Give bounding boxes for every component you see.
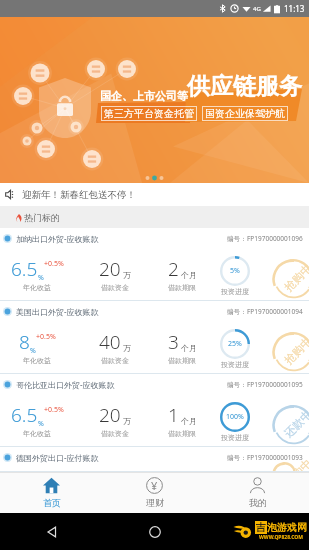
staticText: ¥ [151, 478, 158, 493]
button[interactable]: 抢购中 [0, 228, 309, 301]
staticText: 编号： [227, 381, 247, 389]
staticText: 迎新年！新春红包送不停！ [22, 189, 136, 201]
staticText: 3 [168, 329, 179, 355]
staticText: +0.5% [44, 405, 64, 415]
staticText: 8 [19, 329, 30, 355]
staticText: 第三方平台资金托管 [104, 107, 194, 120]
button[interactable]: 供应链服务 banner [0, 17, 309, 183]
staticText: 热门标的 [24, 212, 60, 223]
staticText: 投资进度 [221, 287, 249, 296]
staticText: 万 [123, 343, 131, 353]
staticText: 20 [99, 256, 121, 282]
button[interactable]: 首页 [0, 472, 103, 513]
staticText: 还款中 [281, 407, 309, 440]
staticText: 吉 [256, 521, 266, 534]
staticText: % [38, 273, 44, 283]
staticText: FP1970000001094 [247, 307, 303, 316]
staticText: 年化收益 [23, 283, 51, 292]
button[interactable]: 我的 [206, 472, 309, 513]
staticText: 借款资金 [101, 356, 129, 365]
staticText: 2 [168, 256, 179, 282]
staticText: 德国外贸出口-应付账款 [16, 452, 99, 463]
staticText: 借款期限 [168, 283, 196, 292]
staticText: FP1970000001095 [247, 380, 303, 389]
staticText: 首页 [43, 497, 61, 508]
staticText: 个月 [181, 416, 197, 426]
staticText: 国资企业保驾护航 [205, 107, 285, 120]
staticText: 编号： [227, 235, 247, 243]
staticText: FP1970000001093 [247, 453, 303, 462]
staticText: 个月 [181, 270, 197, 280]
button[interactable]: 迎新年！新春红包送不停！ [0, 183, 309, 206]
staticText: 编号： [227, 308, 247, 316]
staticText: 投资进度 [221, 433, 249, 442]
staticText: 投资进度 [221, 360, 249, 369]
staticText: +0.5% [36, 332, 56, 342]
staticText: 借款期限 [168, 429, 196, 438]
staticText: 抢购中 [281, 456, 309, 489]
staticText: 40 [99, 329, 121, 355]
staticText: 个月 [181, 343, 197, 353]
staticText: 6.5 [11, 402, 38, 428]
staticText: 20 [99, 402, 121, 428]
staticText: 美国出口外贸-应收账款 [16, 306, 99, 317]
staticText: 理财 [146, 497, 164, 508]
staticText: 抢购中 [281, 261, 309, 294]
staticText: FP1970000001096 [247, 234, 303, 243]
staticText: 供应链服务 [187, 72, 302, 101]
staticText: 泡游戏网 [267, 521, 307, 534]
staticText: 1 [168, 402, 179, 428]
staticText: 25% [228, 339, 242, 349]
staticText: 100% [226, 412, 244, 422]
staticText: 编号： [227, 454, 247, 462]
button[interactable]: ¥ [103, 472, 206, 513]
staticText: 年化收益 [23, 356, 51, 365]
staticText: 5% [230, 266, 240, 276]
staticText: 万 [123, 270, 131, 280]
staticText: 国企、上市公司等 [100, 89, 188, 103]
button[interactable]: 抢购中 [0, 301, 309, 374]
button[interactable]: 还款中 [0, 374, 309, 447]
staticText: +0.5% [44, 259, 64, 269]
button[interactable]: Back [44, 524, 60, 540]
staticText: 借款资金 [101, 283, 129, 292]
button[interactable]: Home [147, 524, 163, 540]
staticText: 借款期限 [168, 356, 196, 365]
staticText: 抢购中 [281, 334, 309, 367]
staticText: 6.5 [11, 256, 38, 282]
staticText: 哥伦比亚出口外贸-应收账款 [16, 379, 115, 390]
staticText: 万 [123, 416, 131, 426]
staticText: 我的 [249, 497, 267, 508]
button[interactable]: 抢购中 [0, 447, 309, 472]
staticText: 加纳出口外贸-应收账款 [16, 233, 99, 244]
staticText: 借款资金 [101, 429, 129, 438]
staticText: % [38, 419, 44, 429]
staticText: 年化收益 [23, 429, 51, 438]
staticText: % [30, 346, 36, 356]
staticText: WWW.QP828.COM [259, 534, 303, 541]
staticText: 4G [253, 5, 261, 13]
staticText: 11:13 [284, 3, 305, 14]
